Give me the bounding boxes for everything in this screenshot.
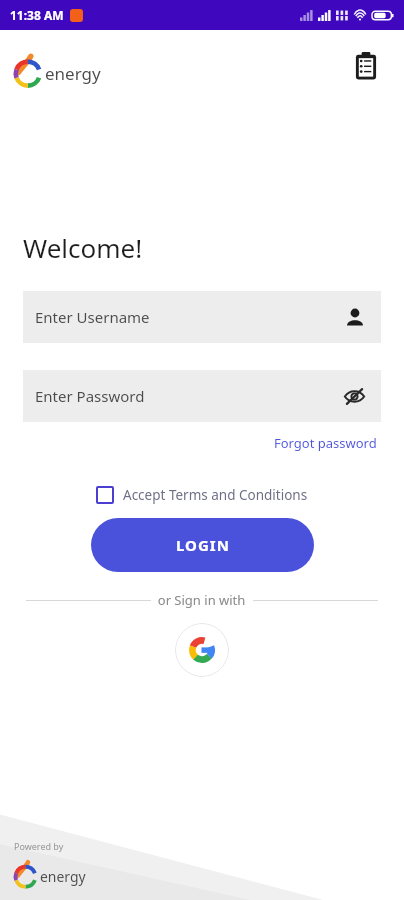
button[interactable]: Enter Username: [23, 291, 381, 343]
staticText: Accept Terms and Conditions: [123, 486, 308, 504]
button[interactable]: Reports: [344, 44, 388, 88]
button[interactable]: Sign in with Google: [175, 623, 229, 677]
button[interactable]: Enter Password: [23, 370, 381, 422]
staticText: energy: [40, 867, 86, 886]
staticText: or Sign in with: [151, 591, 253, 609]
button[interactable]: Forgot password: [270, 430, 381, 456]
staticText: Welcome!: [23, 230, 143, 265]
staticText: energy: [45, 62, 101, 85]
staticText: Forgot password: [274, 434, 377, 452]
button[interactable]: Show password: [341, 383, 367, 409]
staticText: Enter Password: [35, 386, 145, 406]
button[interactable]: LOGIN: [91, 518, 314, 572]
staticText: Powered by: [14, 840, 64, 852]
button[interactable]: Accept Terms and Conditions: [96, 486, 308, 504]
staticText: LOGIN: [176, 535, 230, 555]
staticText: 11:38 AM: [10, 7, 64, 23]
staticText: Enter Username: [35, 307, 150, 327]
